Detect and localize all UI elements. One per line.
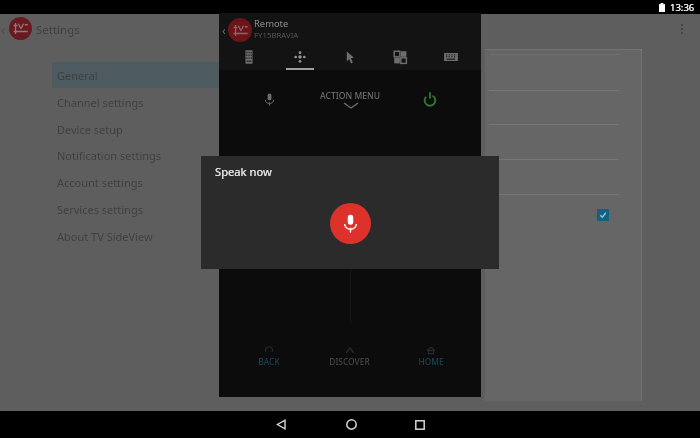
button[interactable]: Channel settings bbox=[52, 89, 347, 115]
button[interactable]: More options bbox=[670, 17, 694, 41]
button[interactable]: Apps bbox=[380, 46, 420, 72]
button[interactable]: HOME bbox=[390, 338, 471, 374]
button[interactable]: DISCOVER bbox=[309, 338, 390, 374]
staticText: Speak now bbox=[215, 164, 272, 179]
button[interactable]: Keyboard bbox=[431, 46, 471, 72]
staticText: Settings bbox=[36, 22, 80, 38]
staticText: ‹ bbox=[222, 22, 226, 38]
staticText: ACTION MENU bbox=[320, 90, 381, 102]
staticText: BACK bbox=[258, 356, 280, 367]
button[interactable]: Power bbox=[417, 86, 443, 112]
staticText: Device setup bbox=[57, 122, 123, 137]
staticText: FY15BRAVIA bbox=[254, 30, 299, 41]
staticText: About TV SideView bbox=[57, 229, 153, 244]
staticText: ‹ bbox=[1, 20, 6, 39]
staticText: Account settings bbox=[57, 175, 143, 190]
staticText: Services settings bbox=[57, 202, 143, 217]
staticText: General bbox=[57, 68, 98, 83]
button[interactable]: Back bbox=[219, 13, 228, 46]
button[interactable]: Notification settings bbox=[52, 142, 347, 168]
staticText: Notification settings bbox=[57, 148, 162, 163]
button[interactable]: Account settings bbox=[52, 169, 347, 195]
button[interactable]: Number pad bbox=[229, 46, 269, 72]
button[interactable]: Recents bbox=[403, 411, 437, 438]
button[interactable]: Back bbox=[264, 411, 298, 438]
button[interactable]: Enable option bbox=[597, 209, 609, 221]
button[interactable]: BACK bbox=[229, 338, 309, 374]
staticText: Channel settings bbox=[57, 95, 144, 110]
button[interactable]: Services settings bbox=[52, 196, 347, 222]
button[interactable]: General bbox=[52, 62, 347, 88]
button[interactable]: ACTION MENU bbox=[305, 90, 395, 116]
staticText: 13:36 bbox=[670, 1, 695, 14]
button[interactable]: About TV SideView bbox=[52, 223, 347, 249]
button[interactable]: D-pad bbox=[280, 46, 320, 72]
staticText: HOME bbox=[418, 356, 444, 367]
button[interactable]: Pointer bbox=[330, 46, 370, 72]
staticText: Remote bbox=[254, 17, 289, 30]
staticText: DISCOVER bbox=[329, 356, 370, 367]
button[interactable]: Stop listening bbox=[330, 203, 371, 244]
button[interactable]: Voice search bbox=[256, 86, 282, 112]
button[interactable]: Home bbox=[334, 411, 368, 438]
button[interactable]: Device setup bbox=[52, 116, 347, 142]
